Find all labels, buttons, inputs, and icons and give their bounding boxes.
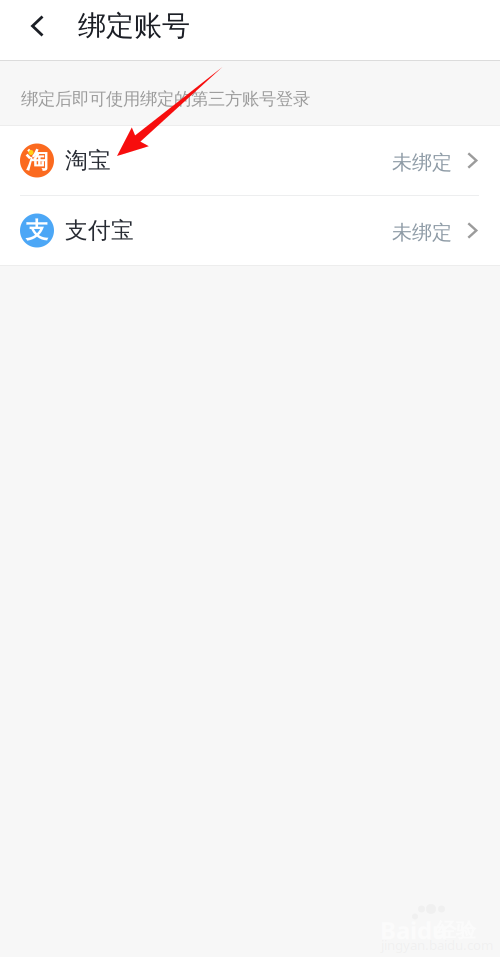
button[interactable]: Back (0, 0, 78, 52)
staticText: 绑定账号 (78, 9, 190, 43)
button[interactable]: 支 (0, 196, 500, 265)
staticText: 支 (25, 217, 48, 244)
staticText: 未绑定 (392, 220, 452, 245)
button[interactable]: 淘 (0, 126, 500, 195)
staticText: 支付宝 (65, 217, 134, 244)
staticText: 绑定后即可使用绑定的第三方账号登录 (21, 88, 310, 110)
staticText: 淘 (25, 147, 48, 174)
staticText: 淘宝 (65, 147, 111, 174)
staticText: 未绑定 (392, 150, 452, 175)
